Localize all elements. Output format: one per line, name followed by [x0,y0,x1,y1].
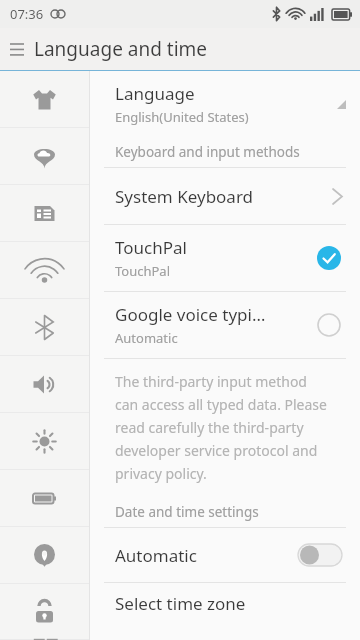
button[interactable]: System Keyboard [90,168,360,224]
staticText: Select time zone [115,592,246,615]
staticText: The third-party input method can access … [115,372,330,483]
button[interactable]: Brightness [0,413,89,470]
staticText: Language [115,82,195,105]
staticText: Language and time [34,36,208,62]
staticText: Date and time settings [115,503,259,521]
staticText: Automatic [115,329,178,347]
button[interactable]: Sound [0,356,89,413]
button[interactable]: Automatic [90,528,360,582]
staticText: 07:36 [10,5,44,23]
button[interactable]: Security [0,584,89,640]
button[interactable]: Menu [0,32,34,66]
staticText: TouchPal [115,236,187,259]
button[interactable]: Cloud [0,128,89,185]
staticText: Keyboard and input methods [115,143,300,161]
staticText: Google voice typi… [115,303,266,326]
button[interactable]: Wi-Fi [0,242,89,299]
button[interactable]: Display [0,71,89,128]
staticText: System Keyboard [115,185,254,208]
button[interactable]: Language [90,71,360,137]
button[interactable]: Battery [0,470,89,527]
button[interactable]: TouchPal [90,225,360,291]
button[interactable]: Google voice typi… [90,292,360,358]
button[interactable]: Location [0,527,89,584]
staticText: Automatic [115,544,197,567]
staticText: TouchPal [115,262,171,280]
staticText: English(United States) [115,108,249,126]
button[interactable]: SIM cards [0,185,89,242]
button[interactable]: Bluetooth [0,299,89,356]
